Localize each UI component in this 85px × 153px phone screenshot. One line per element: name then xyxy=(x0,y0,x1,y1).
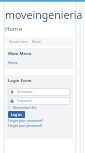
button[interactable]: Home xyxy=(32,40,41,44)
staticText: Log in xyxy=(11,112,22,117)
staticText: Remember Me xyxy=(13,105,37,110)
button[interactable]: Username xyxy=(8,88,70,96)
staticText: Username xyxy=(17,90,33,94)
other: Username xyxy=(10,90,14,94)
staticText: Home xyxy=(5,25,23,33)
button[interactable]: Home xyxy=(8,60,18,65)
staticText: Password xyxy=(17,99,32,103)
staticText: Login Form xyxy=(8,78,32,84)
staticText: moveingenieria xyxy=(5,8,83,22)
button[interactable]: Forgot your password? xyxy=(8,124,43,128)
other: Password xyxy=(10,99,14,103)
button[interactable]: Password xyxy=(8,97,70,105)
staticText: Main Menu xyxy=(8,51,32,57)
button[interactable]: Remember Me xyxy=(8,105,37,110)
button[interactable]: Log in xyxy=(8,111,25,118)
button[interactable]: Forgot your username? xyxy=(8,119,43,123)
staticText: You are here: xyxy=(9,40,29,44)
